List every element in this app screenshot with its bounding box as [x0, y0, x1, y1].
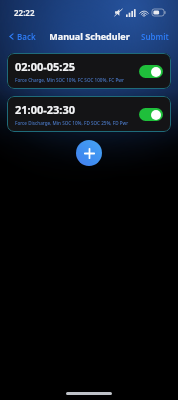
staticText: 22:22	[14, 7, 35, 18]
button[interactable]: Submit	[138, 28, 172, 45]
staticText: Back	[17, 31, 36, 42]
button[interactable]: Toggle schedule	[139, 65, 163, 78]
staticText: Submit	[141, 31, 169, 42]
button[interactable]: 02:00-05:25	[7, 53, 171, 89]
staticText: Manual Scheduler	[49, 30, 130, 42]
button[interactable]: Back	[6, 28, 38, 45]
button[interactable]: 21:00-23:30	[7, 96, 171, 132]
staticText: 21:00-23:30	[15, 102, 76, 117]
button[interactable]: Toggle schedule	[139, 108, 163, 121]
button[interactable]: Add schedule	[76, 140, 102, 166]
staticText: 02:00-05:25	[15, 59, 76, 74]
staticText: Force Discharge, Min SOC 10%, FD SOC 25%…	[15, 120, 133, 126]
staticText: Force Charge, Min SOC 10%, FC SOC 100%, …	[15, 77, 133, 83]
